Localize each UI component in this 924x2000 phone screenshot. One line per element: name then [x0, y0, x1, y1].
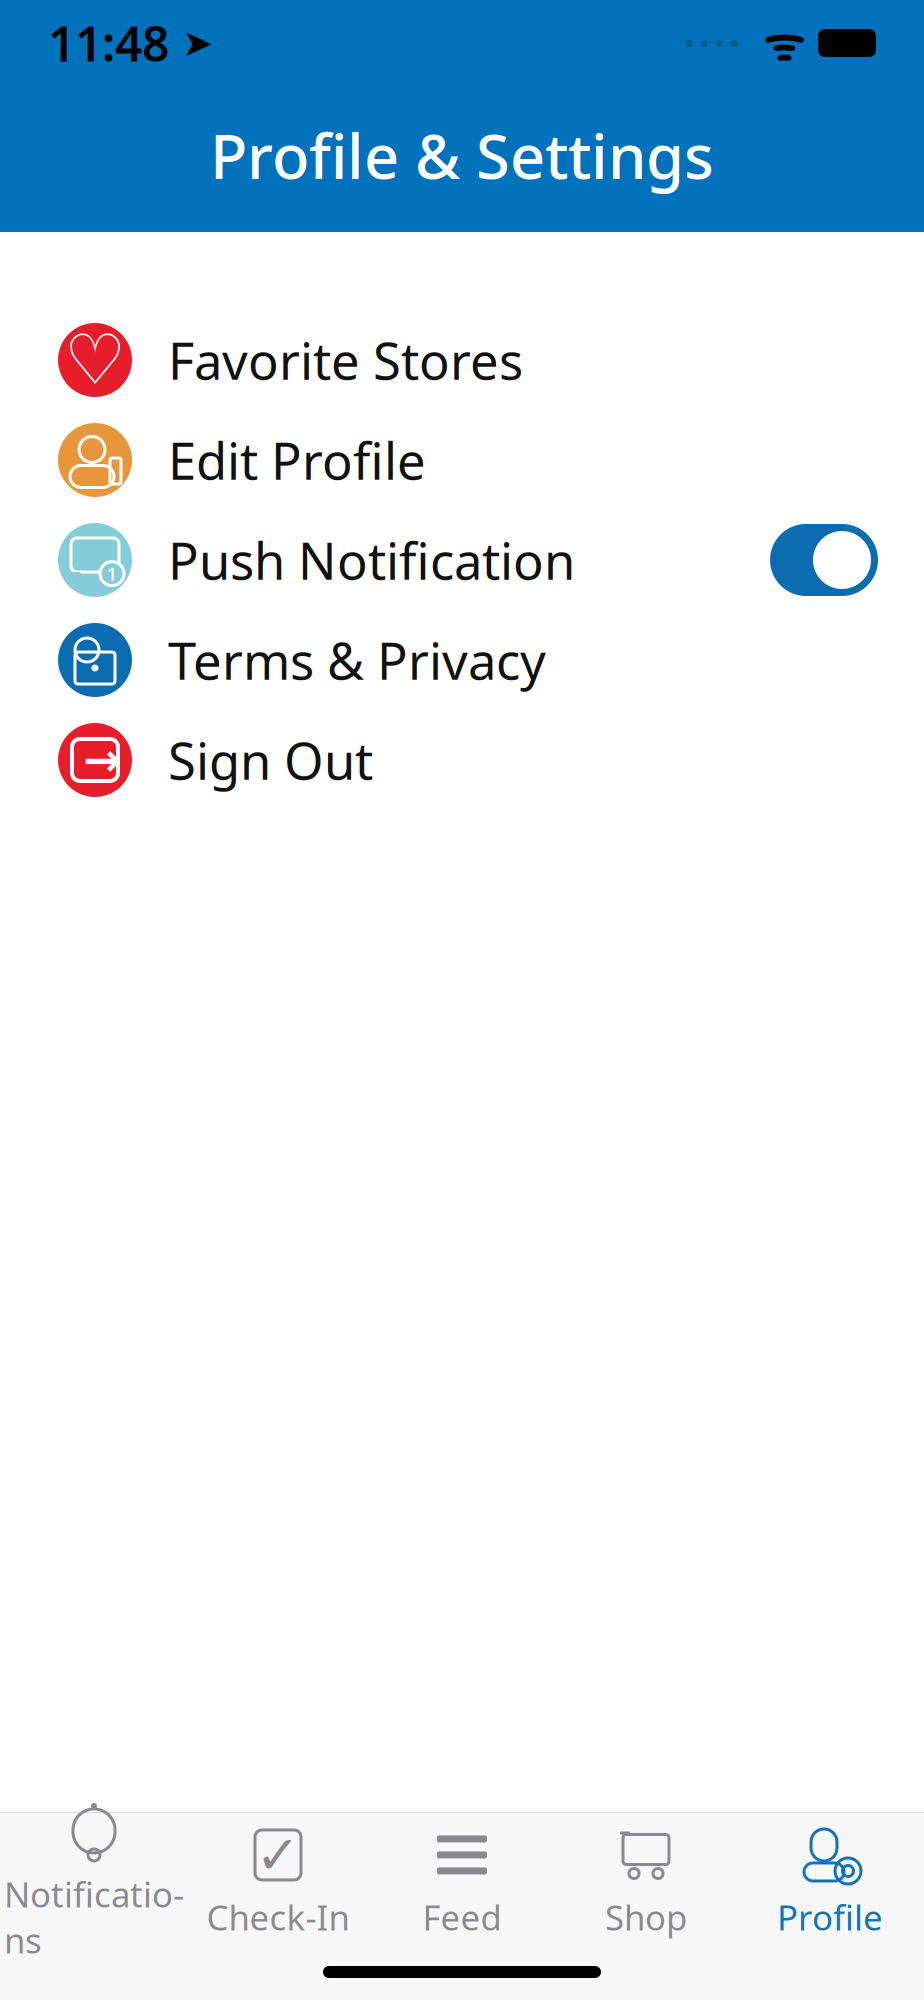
staticText: Check-In — [206, 1894, 349, 1940]
staticText: 1 — [106, 561, 117, 586]
staticText: Edit Profile — [168, 426, 426, 494]
staticText: Push Notification — [168, 526, 575, 594]
staticText: 11:48 — [48, 11, 169, 75]
staticText: Profile — [777, 1894, 883, 1940]
staticText: Terms & Privacy — [168, 626, 546, 694]
button[interactable]: 1 — [0, 510, 924, 610]
staticText: → — [83, 734, 121, 786]
button[interactable]: Feed — [370, 1823, 554, 1941]
staticText: Profile & Settings — [210, 115, 714, 196]
button[interactable]: ✓ — [186, 1823, 370, 1941]
staticText: Shop — [605, 1894, 687, 1940]
button[interactable]: Shop — [554, 1823, 738, 1941]
staticText: ✓ — [255, 1825, 300, 1885]
staticText: • • • • — [685, 27, 739, 59]
staticText: ➤ — [169, 22, 213, 64]
staticText: ᯤ — [739, 13, 804, 73]
staticText: ♡ — [64, 321, 126, 399]
staticText: Favorite Stores — [168, 326, 523, 394]
staticText: Notifications — [4, 1871, 184, 1963]
staticText: Sign Out — [168, 726, 373, 794]
button[interactable]: → — [0, 710, 924, 810]
button[interactable]: Edit Profile — [0, 410, 924, 510]
button[interactable]: Terms & Privacy — [0, 610, 924, 710]
staticText: Feed — [422, 1894, 501, 1940]
button[interactable]: Profile — [738, 1823, 922, 1941]
button[interactable]: Notifications — [2, 1823, 186, 1941]
button[interactable]: ♡ — [0, 310, 924, 410]
